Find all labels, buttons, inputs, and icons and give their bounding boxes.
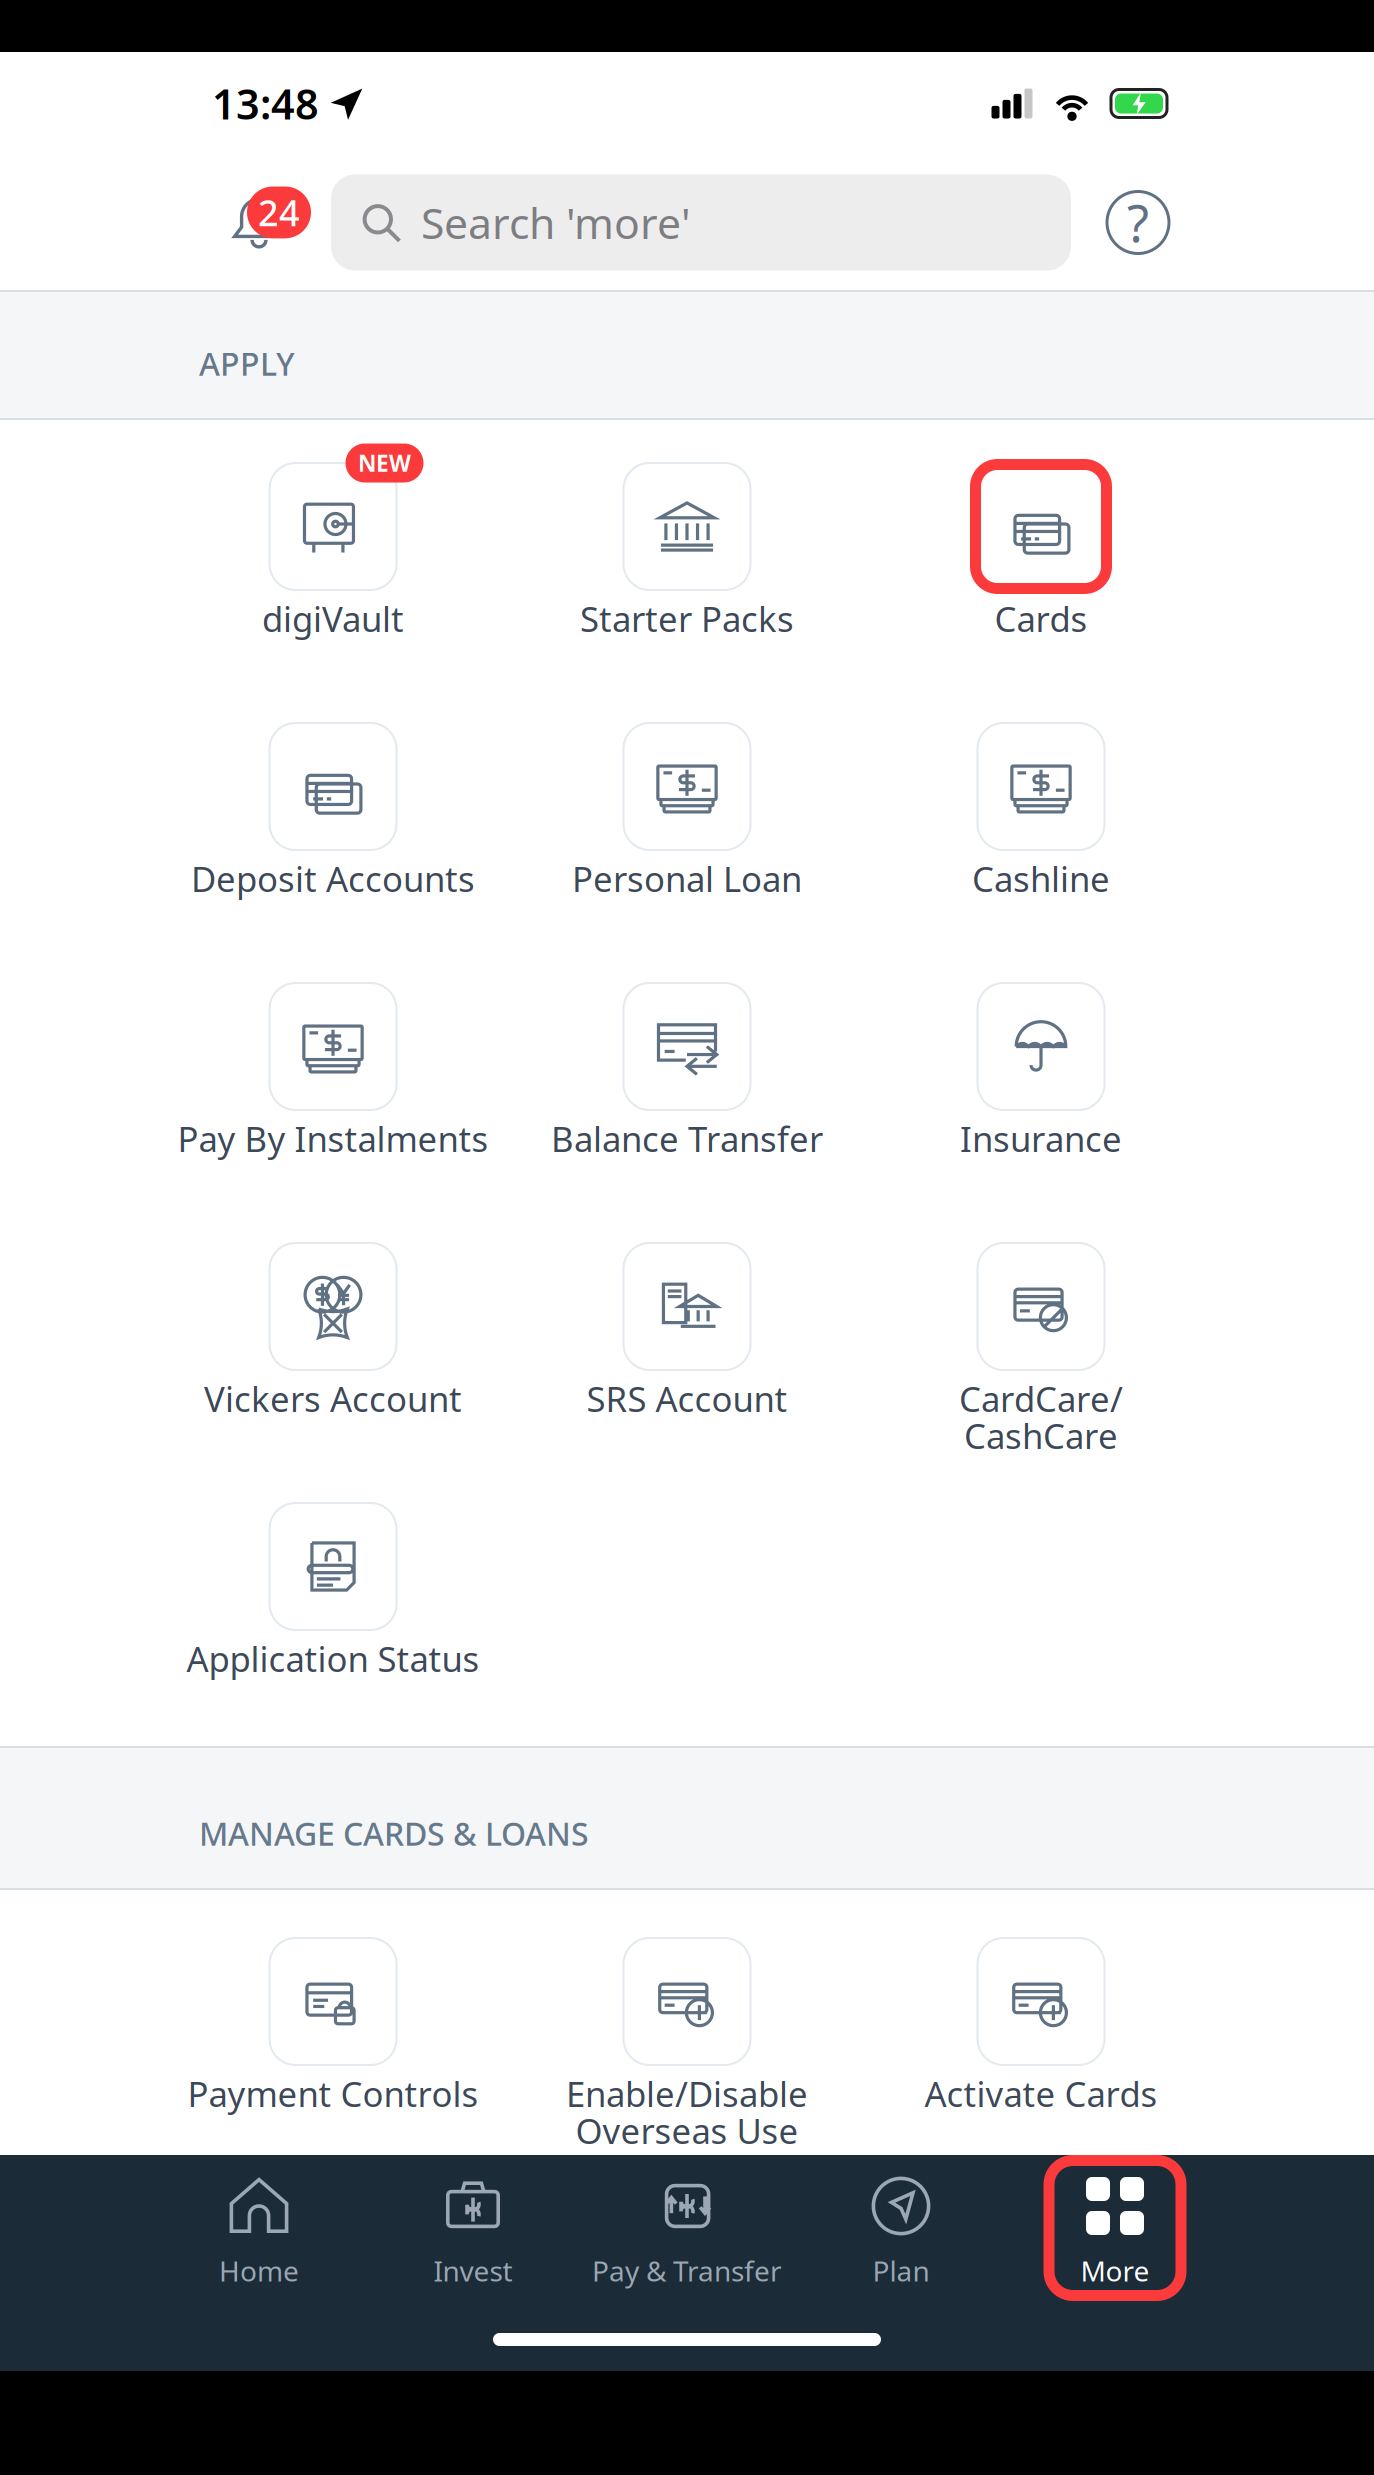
button[interactable]: Application Status [156, 1502, 510, 1746]
staticText: Personal Loan [572, 855, 802, 901]
staticText: Enable/Disable [566, 2070, 808, 2116]
staticText: SRS Account [586, 1375, 787, 1421]
staticText: Invest [433, 2252, 512, 2289]
button[interactable]: Cards [864, 462, 1218, 722]
button[interactable]: Help [1107, 191, 1169, 253]
button[interactable]: Invest [366, 2155, 580, 2313]
button[interactable]: Cashline [864, 722, 1218, 982]
staticText: Activate Cards [924, 2070, 1157, 2116]
staticText: CashCare [964, 1412, 1118, 1458]
button[interactable]: Vickers Account [156, 1242, 510, 1502]
staticText: digiVault [262, 595, 404, 641]
staticText: Application Status [186, 1635, 479, 1681]
button[interactable]: Balance Transfer [510, 982, 864, 1242]
staticText: Cards [994, 595, 1087, 641]
staticText: Deposit Accounts [191, 855, 475, 901]
staticText: Starter Packs [580, 595, 794, 641]
staticText: ? [1127, 189, 1149, 256]
staticText: Pay & Transfer [592, 2252, 782, 2289]
button[interactable]: NEW [156, 462, 510, 722]
button[interactable]: More [1008, 2155, 1222, 2313]
button[interactable]: Payment Controls [156, 1890, 510, 2155]
button[interactable]: CardCare/ [864, 1242, 1218, 1502]
button[interactable]: Search 'more' [331, 174, 1071, 270]
button[interactable]: Pay By Instalments [156, 982, 510, 1242]
button[interactable]: Personal Loan [510, 722, 864, 982]
staticText: More [1080, 2252, 1149, 2289]
staticText: CardCare/ [959, 1375, 1123, 1421]
staticText: 13:48 [212, 76, 319, 131]
staticText: Insurance [960, 1115, 1122, 1161]
button[interactable]: Home [152, 2155, 366, 2313]
staticText: Vickers Account [204, 1375, 462, 1421]
staticText: Balance Transfer [551, 1115, 823, 1161]
staticText: NEW [358, 448, 411, 478]
staticText: Payment Controls [187, 2070, 478, 2116]
staticText: Plan [872, 2252, 929, 2289]
button[interactable]: Deposit Accounts [156, 722, 510, 982]
staticText: Overseas Use [575, 2107, 798, 2153]
button[interactable]: Activate Cards [864, 1890, 1218, 2155]
button[interactable]: SRS Account [510, 1242, 864, 1502]
staticText: Cashline [972, 855, 1110, 901]
staticText: 24 [258, 188, 300, 236]
button[interactable]: Plan [794, 2155, 1008, 2313]
staticText: MANAGE CARDS & LOANS [199, 1812, 589, 1854]
staticText: APPLY [199, 342, 295, 384]
button[interactable]: Pay & Transfer [580, 2155, 794, 2313]
staticText: Home [219, 2252, 299, 2289]
staticText: Pay By Instalments [177, 1115, 488, 1161]
button[interactable]: Starter Packs [510, 462, 864, 722]
button[interactable]: Enable/Disable [510, 1890, 864, 2155]
button[interactable]: Notifications [207, 183, 311, 261]
button[interactable]: Insurance [864, 982, 1218, 1242]
staticText: Search 'more' [421, 194, 691, 251]
